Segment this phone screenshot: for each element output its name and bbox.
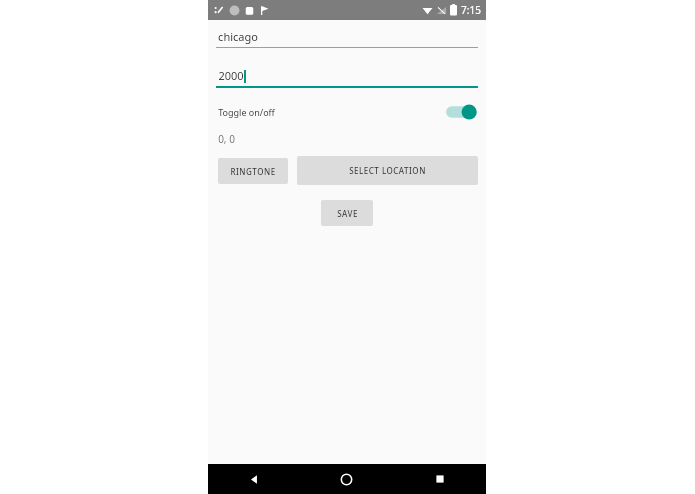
staticText: Toggle on/off <box>218 106 275 118</box>
button[interactable]: SAVE <box>321 200 373 226</box>
button[interactable]: Toggle on/off <box>216 102 478 122</box>
staticText: 7:15 <box>461 3 481 17</box>
button[interactable]: chicago <box>216 29 478 48</box>
button[interactable]: Toggle on/off <box>444 102 478 122</box>
staticText: SAVE <box>337 208 358 219</box>
button[interactable]: Home <box>300 464 393 494</box>
staticText: chicago <box>218 29 258 44</box>
button[interactable]: 2000 <box>216 68 478 88</box>
staticText: SELECT LOCATION <box>349 165 426 176</box>
button[interactable]: RINGTONE <box>218 158 288 184</box>
button[interactable]: Back <box>208 464 300 494</box>
staticText: 0, 0 <box>218 132 235 146</box>
button[interactable]: Recent apps <box>393 464 486 494</box>
staticText: RINGTONE <box>230 166 276 177</box>
staticText: 2000 <box>218 68 244 83</box>
button[interactable]: SELECT LOCATION <box>297 156 478 185</box>
